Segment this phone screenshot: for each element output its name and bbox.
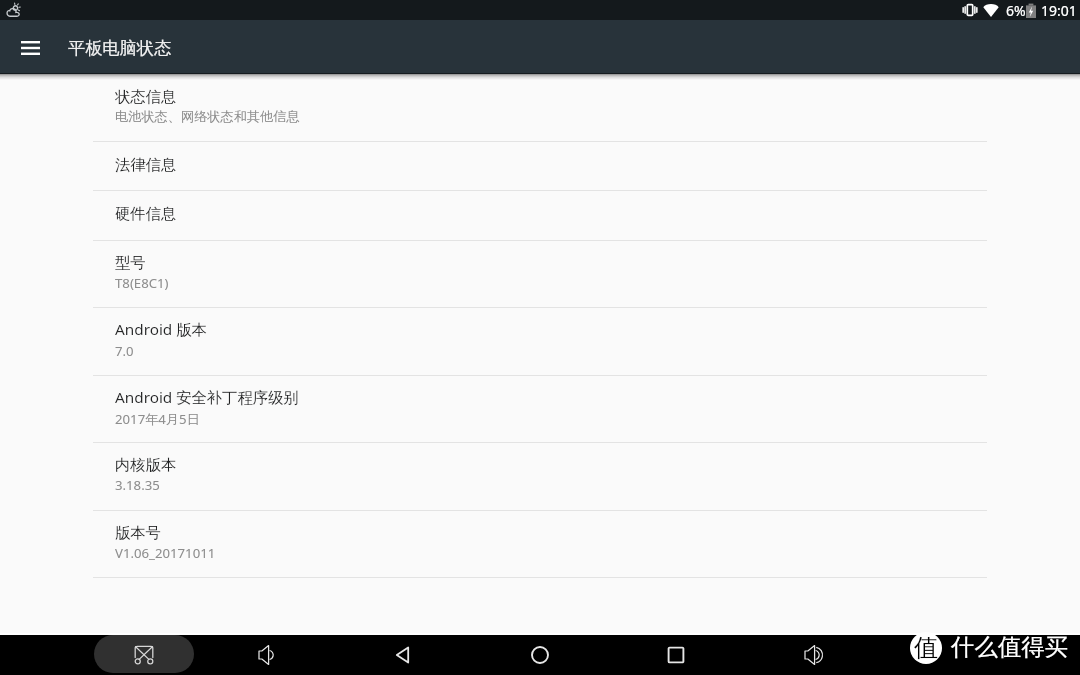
button[interactable]: 状态信息 [0,75,1080,142]
button[interactable]: 版本号 [0,511,1080,578]
staticText: 什么值得买 [951,632,1068,661]
button[interactable]: Android 安全补丁程序级别 [0,376,1080,443]
button[interactable]: 法律信息 [0,142,1080,191]
staticText: 7.0 [115,342,134,360]
staticText: V1.06_20171011 [115,544,216,562]
button[interactable]: Volume down [247,635,287,675]
staticText: 电池状态、网络状态和其他信息 [115,108,300,125]
button[interactable]: Open navigation menu [6,24,54,72]
staticText: 6% [1006,1,1026,20]
button[interactable]: Recent apps [656,635,696,675]
button[interactable]: 硬件信息 [0,191,1080,241]
staticText: Android 版本 [115,319,207,340]
button[interactable]: Home [520,635,560,675]
button[interactable]: Back [383,635,423,675]
button[interactable]: 型号 [0,241,1080,308]
staticText: 2017年4月5日 [115,410,200,428]
staticText: 状态信息 [115,87,177,106]
staticText: 值 [914,633,938,663]
staticText: T8(E8C1) [115,274,169,292]
staticText: 平板电脑状态 [68,37,172,59]
staticText: 型号 [115,253,146,272]
staticText: 法律信息 [115,155,177,174]
button[interactable]: Volume up [793,635,833,675]
button[interactable]: 内核版本 [0,443,1080,511]
button[interactable]: Screenshot [94,635,194,673]
staticText: 3.18.35 [115,476,160,494]
staticText: 版本号 [115,523,161,542]
button[interactable]: Android 版本 [0,308,1080,376]
staticText: 内核版本 [115,455,177,474]
staticText: 19:01 [1041,1,1077,20]
staticText: Android 安全补丁程序级别 [115,387,299,408]
staticText: 硬件信息 [115,204,177,223]
